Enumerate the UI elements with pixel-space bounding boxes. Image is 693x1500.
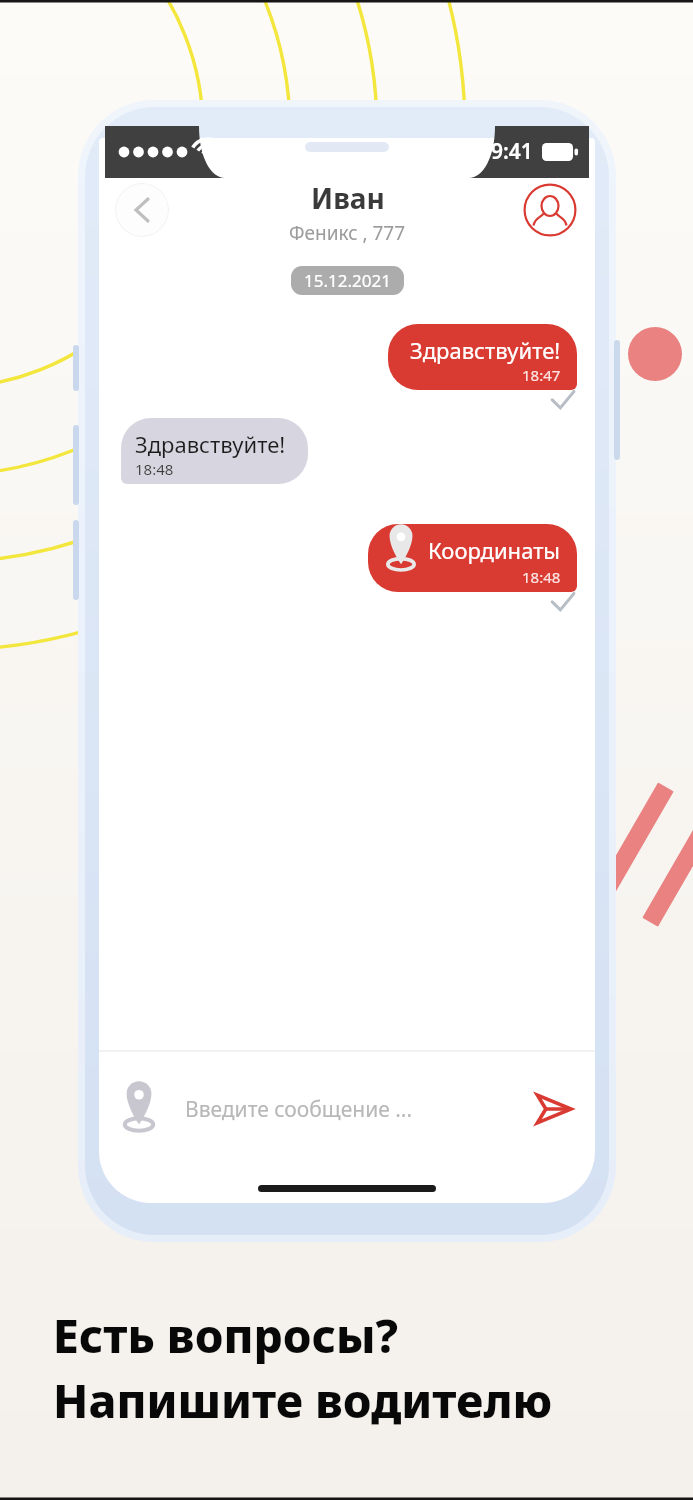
staticText: 15.12.2021: [304, 269, 391, 292]
button[interactable]: Координаты: [368, 524, 577, 592]
staticText: 18:48: [522, 567, 561, 587]
button[interactable]: Здравствуйте!: [388, 324, 577, 390]
staticText: 18:47: [522, 365, 561, 385]
staticText: Здравствуйте!: [410, 335, 561, 365]
staticText: Есть вопросы?: [53, 1304, 399, 1367]
staticText: Координаты: [428, 535, 561, 565]
button[interactable]: Send location: [113, 1083, 165, 1135]
button[interactable]: Back: [115, 183, 169, 237]
staticText: Здравствуйте!: [135, 429, 286, 459]
staticText: 18:48: [129, 138, 183, 159]
staticText: 18:48: [135, 459, 174, 479]
staticText: 9:41: [491, 137, 533, 166]
button[interactable]: Введите сообщение ...: [165, 1079, 525, 1139]
staticText: Напишите водителю: [53, 1369, 553, 1432]
button[interactable]: Send: [525, 1081, 581, 1137]
staticText: Иван: [311, 179, 385, 217]
button[interactable]: Здравствуйте!: [121, 418, 308, 484]
staticText: Феникс , 777: [289, 220, 406, 246]
staticText: Введите сообщение ...: [185, 1095, 413, 1124]
button[interactable]: Profile: [523, 183, 577, 237]
